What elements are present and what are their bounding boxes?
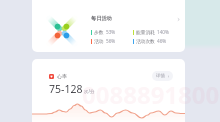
staticText: 活动 [94,38,104,44]
staticText: 心率 [57,73,67,79]
staticText: 能量消耗 [136,29,155,35]
button[interactable]: 心率 [32,59,185,122]
staticText: 56% [106,38,116,44]
staticText: 每日活动 [91,15,112,22]
staticText: 75-128 [49,82,83,96]
button[interactable]: 活动 [91,38,133,44]
staticText: 次/分 [84,88,95,94]
other: 活动圆环 [44,13,80,49]
button[interactable]: 活动次数 [133,38,181,44]
button[interactable]: 详情 [152,71,173,81]
staticText: 活动次数 [136,38,155,44]
button[interactable]: 查看每日活动详情 [175,16,181,22]
staticText: 详情 [156,73,165,79]
staticText: 步数 [94,29,104,35]
button[interactable]: 能量消耗 [133,29,181,35]
staticText: 0088891800 [82,78,220,111]
button[interactable]: 步数 [91,29,133,35]
button[interactable]: 活动圆环 [32,0,185,52]
staticText: 46% [157,38,167,44]
staticText: 53% [106,29,116,35]
staticText: 140% [157,29,169,35]
